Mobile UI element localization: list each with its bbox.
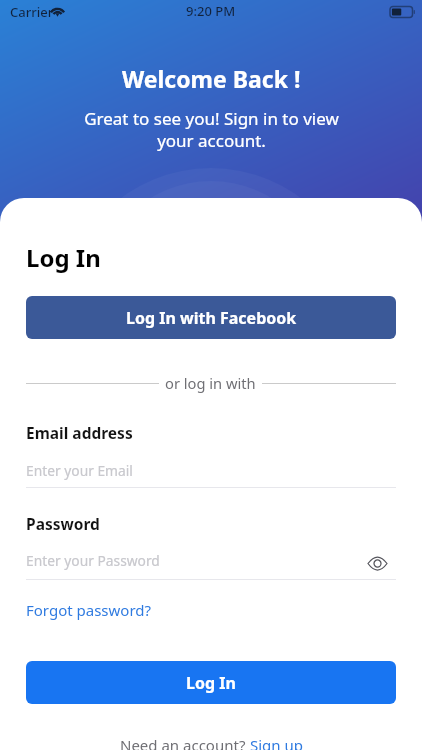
staticText: Enter your Email	[26, 461, 133, 480]
staticText: Welcome Back !	[122, 63, 301, 94]
staticText: Password	[26, 513, 100, 534]
button[interactable]: Show password	[362, 550, 392, 576]
staticText: Need an account?	[120, 735, 250, 750]
staticText: Log In	[26, 241, 101, 274]
staticText: Email address	[26, 422, 133, 443]
staticText: 9:20 PM	[186, 2, 236, 20]
button[interactable]: Sign up	[250, 735, 303, 750]
staticText: Enter your Password	[26, 551, 160, 570]
button[interactable]: Log In with Facebook	[26, 296, 396, 339]
staticText: or log in with	[165, 373, 256, 393]
staticText: Log In	[186, 672, 236, 694]
button[interactable]: Log In	[26, 661, 396, 704]
staticText: Carrier	[10, 3, 54, 21]
button[interactable]: Forgot password?	[26, 600, 152, 620]
staticText: Great to see you! Sign in to view your a…	[84, 107, 339, 152]
staticText: Log In with Facebook	[126, 307, 297, 329]
